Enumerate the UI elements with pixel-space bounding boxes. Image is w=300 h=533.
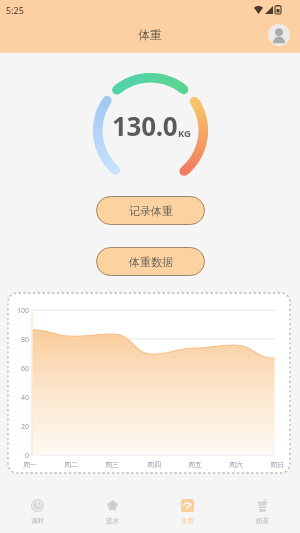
staticText: 20 [21,422,30,432]
staticText: 周六 [229,460,243,469]
button[interactable]: 流水 [75,486,150,533]
staticText: 周四 [147,460,161,469]
button[interactable]: 体重 [150,486,225,533]
staticText: 0 [25,451,30,461]
button[interactable]: 奶茶 [225,486,300,533]
staticText: 周五 [188,460,202,469]
staticText: 体重 [181,517,194,525]
staticText: 130.0 [112,108,178,143]
staticText: KG [178,127,191,140]
button[interactable]: Profile [268,24,290,46]
button[interactable]: 课时 [0,486,75,533]
staticText: 80 [21,335,30,345]
staticText: 周日 [270,460,284,469]
staticText: 体重数据 [129,255,173,269]
staticText: 周三 [105,460,119,469]
button[interactable]: 体重数据 [96,247,205,276]
staticText: 周二 [64,460,78,469]
staticText: 40 [21,393,30,403]
staticText: 奶茶 [256,517,269,525]
staticText: 记录体重 [129,204,173,218]
staticText: 体重 [138,27,162,42]
button[interactable]: 记录体重 [96,196,205,225]
staticText: 课时 [31,517,44,525]
staticText: 周一 [23,460,37,469]
staticText: 100 [17,306,30,316]
staticText: 60 [21,364,30,374]
staticText: 5:25 [6,4,24,16]
staticText: 流水 [106,517,119,525]
